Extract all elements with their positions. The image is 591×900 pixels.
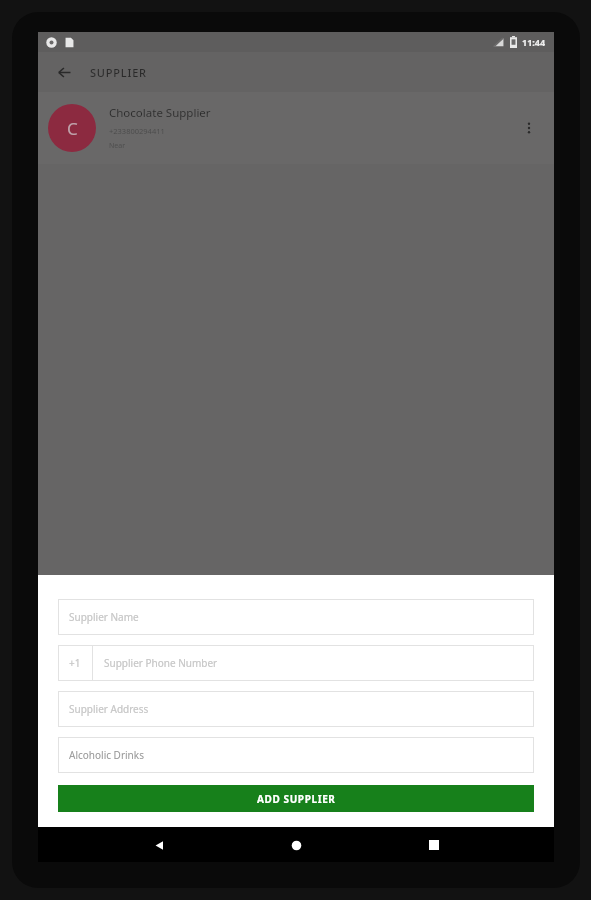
button[interactable]: Alcoholic Drinks	[58, 737, 534, 773]
staticText: Supplier Phone Number	[104, 656, 218, 670]
staticText: +233800294411	[109, 126, 165, 136]
staticText: Near	[109, 141, 126, 151]
button[interactable]: Supplier Name	[58, 599, 534, 635]
button[interactable]: C	[38, 92, 554, 164]
button[interactable]: +1	[58, 645, 534, 681]
staticText: Supplier Name	[69, 610, 139, 624]
button[interactable]: Back	[142, 828, 176, 862]
staticText: ADD SUPPLIER	[257, 792, 336, 806]
button[interactable]: Home	[279, 828, 313, 862]
staticText: Chocolate Supplier	[109, 105, 211, 121]
staticText: Supplier Address	[69, 702, 149, 716]
button[interactable]: Recent apps	[417, 828, 451, 862]
staticText: SUPPLIER	[90, 65, 147, 80]
staticText: C	[67, 117, 78, 140]
button[interactable]: Supplier Address	[58, 691, 534, 727]
staticText: 11:44	[522, 36, 546, 48]
button[interactable]: More options	[514, 113, 544, 143]
button[interactable]: ADD SUPPLIER	[58, 785, 534, 812]
staticText: Alcoholic Drinks	[69, 748, 144, 762]
staticText: +1	[69, 656, 81, 670]
button[interactable]: Back	[48, 56, 80, 88]
